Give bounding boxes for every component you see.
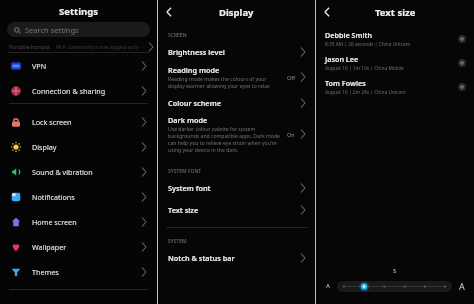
staticText: Wallpaper xyxy=(32,242,67,252)
staticText: Notifications xyxy=(32,192,75,202)
button[interactable]: Wallpaper xyxy=(0,234,157,259)
staticText: SCREEN xyxy=(168,32,187,39)
staticText: Portable hotspot xyxy=(9,43,50,50)
button[interactable]: Connection & sharing xyxy=(0,78,157,103)
staticText: Display xyxy=(219,6,254,19)
staticText: Off xyxy=(287,74,295,81)
staticText: 8:35 AM | 26 seconds | China Unicom xyxy=(325,41,411,48)
staticText: … xyxy=(139,43,143,50)
staticText: August 16 | 1m 10s | China Mobile xyxy=(325,65,404,72)
button[interactable]: VPN xyxy=(0,53,157,78)
staticText: A xyxy=(459,280,465,292)
button[interactable]: Call details xyxy=(458,35,466,43)
button[interactable]: Call details xyxy=(458,59,466,67)
staticText: SYSTEM FONT xyxy=(168,168,202,175)
button[interactable]: Brightness level xyxy=(158,41,315,62)
staticText: SYSTEM xyxy=(168,238,187,245)
staticText: Jason Lee xyxy=(325,54,359,64)
staticText: Text size xyxy=(375,6,416,19)
staticText: Connection & sharing xyxy=(32,86,106,96)
button[interactable]: Sound & vibration xyxy=(0,159,157,184)
button[interactable]: Home screen xyxy=(0,209,157,234)
button[interactable]: Notch & status bar xyxy=(158,247,315,269)
staticText: S xyxy=(393,267,397,275)
staticText: Wi-Fi connectivity is now toggled early xyxy=(56,44,139,50)
button[interactable]: Text size xyxy=(158,199,315,221)
button[interactable]: Display xyxy=(0,134,157,159)
button[interactable]: Jason Lee xyxy=(316,51,474,75)
staticText: August 16 | 2m 24s | China Unicom xyxy=(325,89,406,96)
staticText: VPN xyxy=(32,61,47,71)
staticText: Dark mode xyxy=(168,115,208,125)
button[interactable]: Notifications xyxy=(0,184,157,209)
staticText: Colour scheme xyxy=(168,98,221,108)
button[interactable]: Back xyxy=(162,5,176,19)
staticText: System font xyxy=(168,183,211,193)
staticText: Tom Fowles xyxy=(325,78,366,88)
button[interactable]: Reading mode xyxy=(158,62,315,92)
button[interactable]: Dark mode xyxy=(158,113,315,155)
staticText: Home screen xyxy=(32,217,77,227)
staticText: Lock screen xyxy=(32,117,72,127)
staticText: Text size xyxy=(168,205,199,215)
button[interactable]: Tom Fowles xyxy=(316,75,474,99)
staticText: Notch & status bar xyxy=(168,253,235,263)
button[interactable]: Debbie Smith xyxy=(316,27,474,51)
staticText: Debbie Smith xyxy=(325,30,372,40)
button[interactable]: Call details xyxy=(458,83,466,91)
staticText: Search settings xyxy=(25,25,79,35)
staticText: Display xyxy=(32,142,57,152)
button[interactable]: Themes xyxy=(0,259,157,284)
button[interactable]: Back xyxy=(320,5,334,19)
staticText: Brightness level xyxy=(168,47,225,57)
staticText: Settings xyxy=(59,5,98,18)
button[interactable] xyxy=(337,281,452,292)
button[interactable]: Colour scheme xyxy=(158,92,315,113)
button[interactable]: Search settings xyxy=(7,22,150,37)
staticText: Sound & vibration xyxy=(32,167,93,177)
staticText: Themes xyxy=(32,267,59,277)
button[interactable]: System font xyxy=(158,177,315,199)
button[interactable]: Portable hotspot xyxy=(0,41,157,52)
staticText: A xyxy=(326,282,330,290)
staticText: On xyxy=(287,131,295,138)
button[interactable]: Lock screen xyxy=(0,109,157,134)
staticText: Reading mode xyxy=(168,65,220,75)
staticText: Reading mode makes the colours of your d… xyxy=(168,76,270,90)
staticText: Use darker colour palette for system bac… xyxy=(168,126,280,154)
